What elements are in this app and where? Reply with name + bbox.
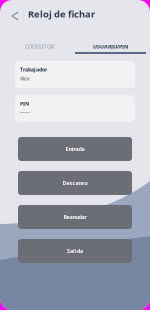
button[interactable]: Entrada — [18, 137, 132, 161]
staticText: Trabajador — [20, 66, 47, 73]
staticText: Salida — [67, 247, 83, 255]
staticText: ••••• — [20, 109, 30, 116]
button[interactable]: Back — [0, 4, 28, 24]
staticText: Alex — [20, 75, 30, 82]
button[interactable]: CÓDIGO QR — [4, 28, 75, 54]
button[interactable]: USUARIO/PIN — [75, 28, 146, 54]
staticText: Reloj de fichar — [28, 8, 95, 20]
staticText: PIN — [20, 100, 29, 107]
staticText: Reanudar — [63, 213, 86, 221]
staticText: USUARIO/PIN — [93, 43, 128, 50]
button[interactable]: Salida — [18, 239, 132, 263]
button[interactable]: Descanso — [18, 171, 132, 195]
staticText: Entrada — [65, 145, 84, 153]
button[interactable]: Reanudar — [18, 205, 132, 229]
staticText: CÓDIGO QR — [25, 43, 54, 50]
staticText: Descanso — [62, 179, 87, 187]
